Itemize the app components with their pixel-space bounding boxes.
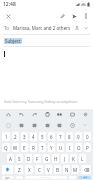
button[interactable]: U [57, 143, 64, 152]
button[interactable]: More keyboard tools [81, 121, 89, 129]
staticText: Q [4, 145, 8, 151]
button[interactable]: 3 [21, 132, 28, 141]
button[interactable]: Shift [2, 165, 13, 174]
staticText: To [4, 25, 9, 31]
button[interactable]: Handwriting [4, 110, 12, 118]
staticText: 4 [32, 134, 35, 140]
button[interactable]: , [16, 176, 23, 179]
staticText: B [56, 167, 59, 173]
button[interactable]: 2 [12, 132, 19, 141]
button[interactable]: X [25, 165, 33, 174]
staticText: L [81, 156, 84, 162]
button[interactable]: Backspace [81, 165, 91, 174]
staticText: S [18, 156, 21, 162]
button[interactable]: Close [3, 11, 13, 21]
staticText: 3 [23, 134, 26, 140]
button[interactable]: S [16, 154, 23, 163]
button[interactable]: Subject [0, 35, 93, 46]
button[interactable]: 0 [84, 132, 91, 141]
button[interactable]: Expand recipients [82, 24, 90, 32]
button[interactable]: . [69, 176, 76, 179]
staticText: Subject [5, 38, 21, 44]
staticText: I [69, 145, 71, 151]
button[interactable]: O [75, 143, 82, 152]
button[interactable]: More options [81, 11, 90, 20]
button[interactable]: C [35, 165, 43, 174]
staticText: T [41, 145, 44, 151]
staticText: R [32, 145, 35, 151]
staticText: Sent from my Samsung Galaxy smartphone. [4, 99, 79, 104]
button[interactable]: 4 [30, 132, 37, 141]
button[interactable]: 1 [2, 132, 10, 141]
button[interactable]: Settings [81, 110, 89, 118]
button[interactable]: J [61, 154, 68, 163]
button[interactable]: Keyboard tool 4 [43, 121, 51, 129]
staticText: C [38, 167, 41, 173]
staticText: P [86, 145, 89, 151]
staticText: G [45, 156, 49, 162]
button[interactable]: L [79, 154, 86, 163]
button[interactable]: V [45, 165, 52, 174]
staticText: 9 [77, 134, 80, 140]
button[interactable]: Sent from my Samsung Galaxy smartphone. [0, 47, 93, 109]
button[interactable]: Redo [30, 110, 38, 118]
staticText: D [27, 156, 31, 162]
button[interactable]: !#1 [2, 176, 14, 179]
button[interactable]: R [30, 143, 37, 152]
staticText: H [54, 156, 58, 162]
button[interactable]: F [34, 154, 41, 163]
button[interactable]: N [63, 165, 70, 174]
button[interactable]: I [66, 143, 73, 152]
staticText: F [36, 156, 39, 162]
staticText: K [72, 156, 75, 162]
staticText: 1 [5, 134, 8, 140]
button[interactable]: Split keyboard [68, 110, 76, 118]
button[interactable]: Z [15, 165, 23, 174]
button[interactable]: Keyboard tool 1 [4, 121, 12, 129]
button[interactable]: G [43, 154, 50, 163]
staticText: X [28, 167, 31, 173]
button[interactable]: Keyboard tool 3 [30, 121, 38, 129]
button[interactable]: Clipboard [43, 110, 51, 118]
button[interactable]: Space [25, 176, 67, 179]
button[interactable]: T [39, 143, 46, 152]
button[interactable]: A [7, 154, 14, 163]
button[interactable]: 6 [48, 132, 55, 141]
button[interactable]: 7 [57, 132, 64, 141]
staticText: Y [50, 145, 53, 151]
button[interactable]: B [54, 165, 61, 174]
staticText: 0 [86, 134, 89, 140]
staticText: 6 [50, 134, 53, 140]
button[interactable]: Keyboard tool 2 [17, 121, 25, 129]
button[interactable]: Add from contacts [73, 24, 81, 32]
button[interactable]: W [12, 143, 19, 152]
button[interactable]: Attach file [57, 11, 67, 21]
button[interactable]: To [0, 22, 93, 34]
button[interactable]: E [21, 143, 28, 152]
button[interactable]: Send [69, 11, 79, 21]
button[interactable]: Keyboard tool 6 [68, 121, 76, 129]
button[interactable]: 9 [75, 132, 82, 141]
button[interactable]: Done [78, 176, 91, 179]
button[interactable]: Q [2, 143, 10, 152]
staticText: 5 [41, 134, 44, 140]
staticText: V [47, 167, 50, 173]
button[interactable]: M [72, 165, 79, 174]
button[interactable]: Keyboard tool 5 [55, 121, 63, 129]
staticText: A [9, 156, 12, 162]
button[interactable]: H [52, 154, 59, 163]
button[interactable]: Undo [17, 110, 25, 118]
staticText: O [77, 145, 81, 151]
button[interactable]: K [70, 154, 77, 163]
staticText: Z [18, 167, 21, 173]
staticText: N [65, 167, 69, 173]
button[interactable]: Y [48, 143, 55, 152]
button[interactable]: Text size [55, 110, 63, 118]
button[interactable]: 5 [39, 132, 46, 141]
button[interactable]: D [25, 154, 32, 163]
button[interactable]: 8 [66, 132, 73, 141]
button[interactable]: P [84, 143, 91, 152]
staticText: E [23, 145, 26, 151]
staticText: U [59, 145, 63, 151]
